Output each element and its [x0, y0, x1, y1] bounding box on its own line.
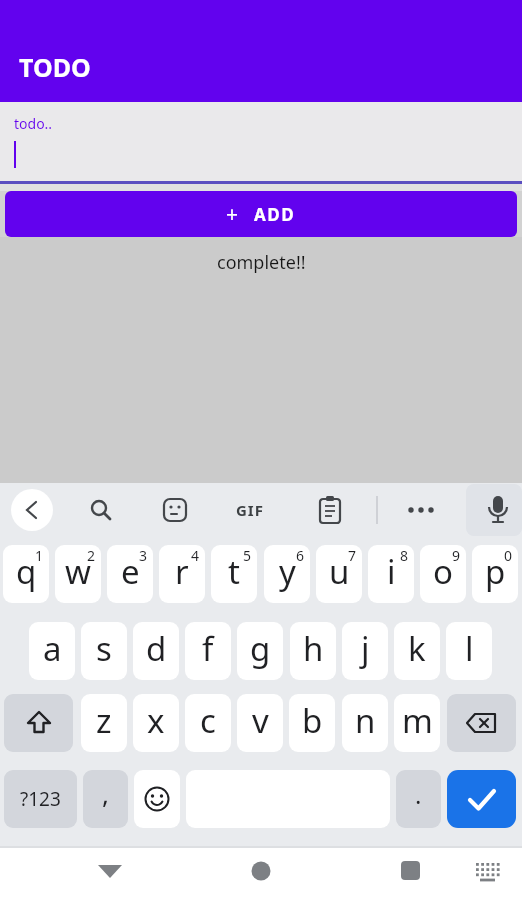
button[interactable]: [388, 856, 432, 892]
button[interactable]: m: [394, 694, 440, 752]
button[interactable]: p: [472, 545, 518, 603]
staticText: a: [43, 626, 62, 671]
button[interactable]: [447, 694, 516, 752]
button[interactable]: w: [55, 545, 101, 603]
button[interactable]: a: [29, 622, 75, 680]
staticText: 9: [452, 546, 461, 565]
staticText: 4: [191, 546, 200, 565]
button[interactable]: [405, 495, 437, 527]
button[interactable]: [134, 770, 180, 828]
button[interactable]: k: [394, 622, 440, 680]
button[interactable]: x: [133, 694, 179, 752]
button[interactable]: GIF: [236, 500, 264, 520]
button[interactable]: +: [5, 191, 517, 237]
button[interactable]: l: [446, 622, 492, 680]
staticText: b: [302, 698, 323, 743]
staticText: t: [228, 549, 240, 594]
staticText: y: [279, 549, 296, 594]
button[interactable]: u: [316, 545, 362, 603]
staticText: f: [202, 626, 214, 671]
staticText: 2: [87, 546, 96, 565]
button[interactable]: [470, 856, 510, 892]
staticText: ?123: [20, 786, 61, 812]
staticText: 5: [243, 546, 252, 565]
staticText: l: [465, 626, 474, 671]
staticText: todo..: [14, 114, 53, 133]
staticText: h: [303, 626, 324, 671]
button[interactable]: v: [237, 694, 283, 752]
button[interactable]: z: [81, 694, 127, 752]
staticText: j: [361, 626, 370, 671]
staticText: o: [433, 549, 453, 594]
staticText: e: [121, 549, 140, 594]
button[interactable]: [159, 495, 191, 527]
staticText: q: [16, 549, 37, 594]
button[interactable]: [88, 858, 132, 890]
staticText: u: [329, 549, 350, 594]
button[interactable]: [480, 490, 518, 530]
staticText: c: [200, 698, 216, 743]
staticText: 6: [296, 546, 305, 565]
staticText: g: [250, 626, 271, 671]
button[interactable]: o: [420, 545, 466, 603]
button[interactable]: [11, 489, 53, 531]
staticText: TODO: [19, 50, 91, 84]
button[interactable]: .: [396, 770, 441, 828]
staticText: s: [96, 626, 112, 671]
button[interactable]: t: [211, 545, 257, 603]
button[interactable]: [314, 495, 346, 527]
staticText: x: [147, 698, 165, 743]
staticText: r: [175, 549, 189, 594]
button[interactable]: n: [342, 694, 388, 752]
button[interactable]: ,: [83, 770, 128, 828]
button[interactable]: r: [159, 545, 205, 603]
button[interactable]: f: [185, 622, 231, 680]
staticText: 8: [400, 546, 409, 565]
staticText: 3: [139, 546, 148, 565]
button[interactable]: h: [290, 622, 336, 680]
staticText: +: [226, 200, 239, 229]
button[interactable]: [239, 856, 283, 892]
staticText: complete!!: [217, 250, 306, 274]
staticText: n: [355, 698, 376, 743]
button[interactable]: todo..: [0, 102, 522, 181]
button[interactable]: c: [185, 694, 231, 752]
staticText: p: [485, 549, 506, 594]
button[interactable]: ?123: [4, 770, 77, 828]
button[interactable]: i: [368, 545, 414, 603]
staticText: w: [65, 549, 91, 594]
staticText: ,: [102, 776, 109, 811]
staticText: d: [146, 626, 167, 671]
staticText: ADD: [254, 203, 296, 226]
button[interactable]: y: [264, 545, 310, 603]
button[interactable]: s: [81, 622, 127, 680]
button[interactable]: g: [237, 622, 283, 680]
staticText: k: [408, 626, 426, 671]
button[interactable]: b: [289, 694, 335, 752]
button[interactable]: [85, 495, 117, 527]
button[interactable]: e: [107, 545, 153, 603]
staticText: m: [402, 698, 433, 743]
staticText: z: [96, 698, 112, 743]
button[interactable]: [447, 770, 516, 828]
staticText: i: [387, 549, 396, 594]
button[interactable]: d: [133, 622, 179, 680]
button[interactable]: q: [3, 545, 49, 603]
staticText: v: [252, 698, 269, 743]
staticText: 1: [35, 546, 44, 565]
staticText: .: [415, 778, 422, 811]
staticText: 7: [348, 546, 357, 565]
button[interactable]: [4, 694, 73, 752]
button[interactable]: j: [342, 622, 388, 680]
staticText: 0: [504, 546, 513, 565]
